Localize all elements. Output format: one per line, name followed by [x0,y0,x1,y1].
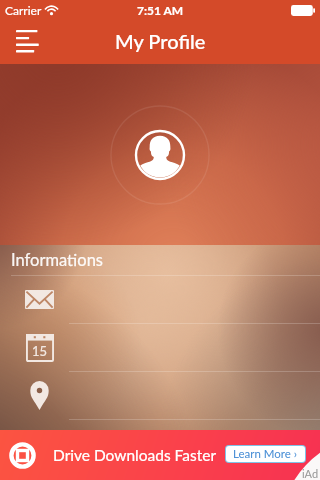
button[interactable]: Profile picture [110,105,210,205]
other: Advertisement [9,442,36,469]
button[interactable]: Location [0,372,320,419]
other: Location [30,381,49,410]
staticText: 15 [32,343,48,359]
staticText: My Profile [115,29,206,53]
button[interactable]: Date [0,324,320,371]
button[interactable]: Open navigation menu [0,20,52,64]
staticText: Learn More › [233,447,298,461]
other: Email [25,290,54,309]
button[interactable]: Email [0,276,320,323]
other: Date [26,334,54,362]
button[interactable] [0,430,320,480]
staticText: 7:51 AM [137,3,184,17]
staticText: iAd [302,467,319,480]
staticText: Drive Downloads Faster [53,446,217,465]
staticText: Carrier [5,3,42,17]
staticText: Informations [11,250,103,270]
button[interactable]: Learn More › [233,447,298,461]
